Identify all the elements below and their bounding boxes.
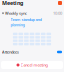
staticText: 10:00 [53, 10, 62, 16]
staticText: Meeting [2, 0, 23, 7]
staticText: Attendees [2, 49, 19, 55]
staticText: Weekly sync [5, 10, 27, 16]
staticText: Team standup and planning [10, 17, 41, 27]
staticText: Cancel meeting [20, 62, 47, 68]
button[interactable]: Profile [58, 1, 62, 5]
button[interactable]: Cancel meeting [1, 61, 63, 69]
